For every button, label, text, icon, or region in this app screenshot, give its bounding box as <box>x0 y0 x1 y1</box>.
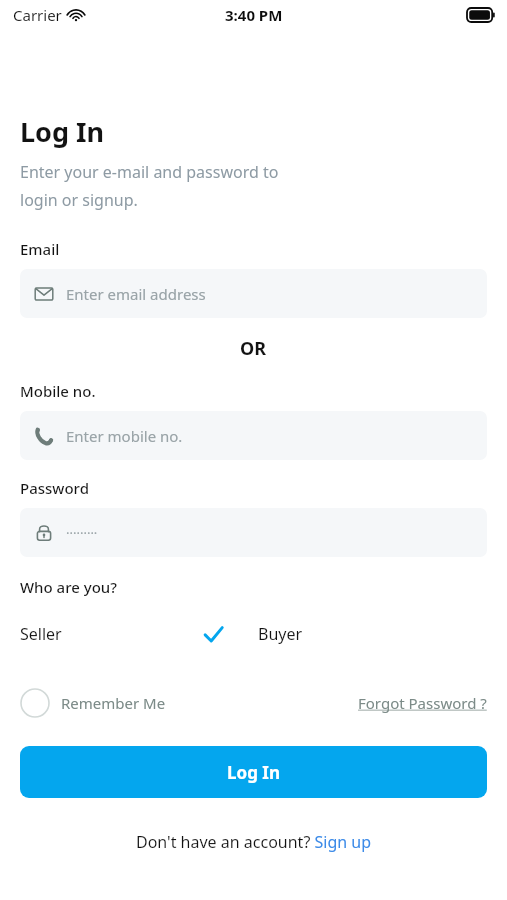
staticText: Log In <box>20 113 105 150</box>
staticText: Enter your e-mail and password to <box>20 161 279 183</box>
staticText: Remember Me <box>61 693 166 713</box>
staticText: Enter email address <box>66 284 206 304</box>
button[interactable]: Remember Me <box>20 688 166 718</box>
staticText: Mobile no. <box>20 381 96 401</box>
button[interactable]: Don't have an account? Sign up <box>136 831 372 853</box>
staticText: login or signup. <box>20 189 138 211</box>
staticText: Password <box>20 478 89 498</box>
staticText: Forgot Password ? <box>358 693 487 713</box>
staticText: Don't have an account? Sign up <box>136 831 372 853</box>
staticText: OR <box>240 336 267 361</box>
staticText: Log In <box>227 761 280 784</box>
staticText: Email <box>20 239 60 259</box>
button[interactable]: Enter mobile no. <box>20 411 487 460</box>
button[interactable]: Forgot Password ? <box>358 693 487 713</box>
button[interactable]: Selected role <box>198 621 228 647</box>
button[interactable]: Enter email address <box>20 269 487 318</box>
button[interactable]: Buyer <box>258 623 303 645</box>
staticText: Carrier <box>13 5 62 25</box>
staticText: ········· <box>66 524 98 542</box>
staticText: Buyer <box>258 623 303 645</box>
staticText: 3:40 PM <box>225 5 283 25</box>
staticText: Seller <box>20 623 62 645</box>
button[interactable]: ········· <box>20 508 487 557</box>
staticText: Who are you? <box>20 577 117 597</box>
button[interactable]: Log In <box>20 746 487 798</box>
staticText: Enter mobile no. <box>66 426 183 446</box>
button[interactable]: Seller <box>20 623 62 645</box>
